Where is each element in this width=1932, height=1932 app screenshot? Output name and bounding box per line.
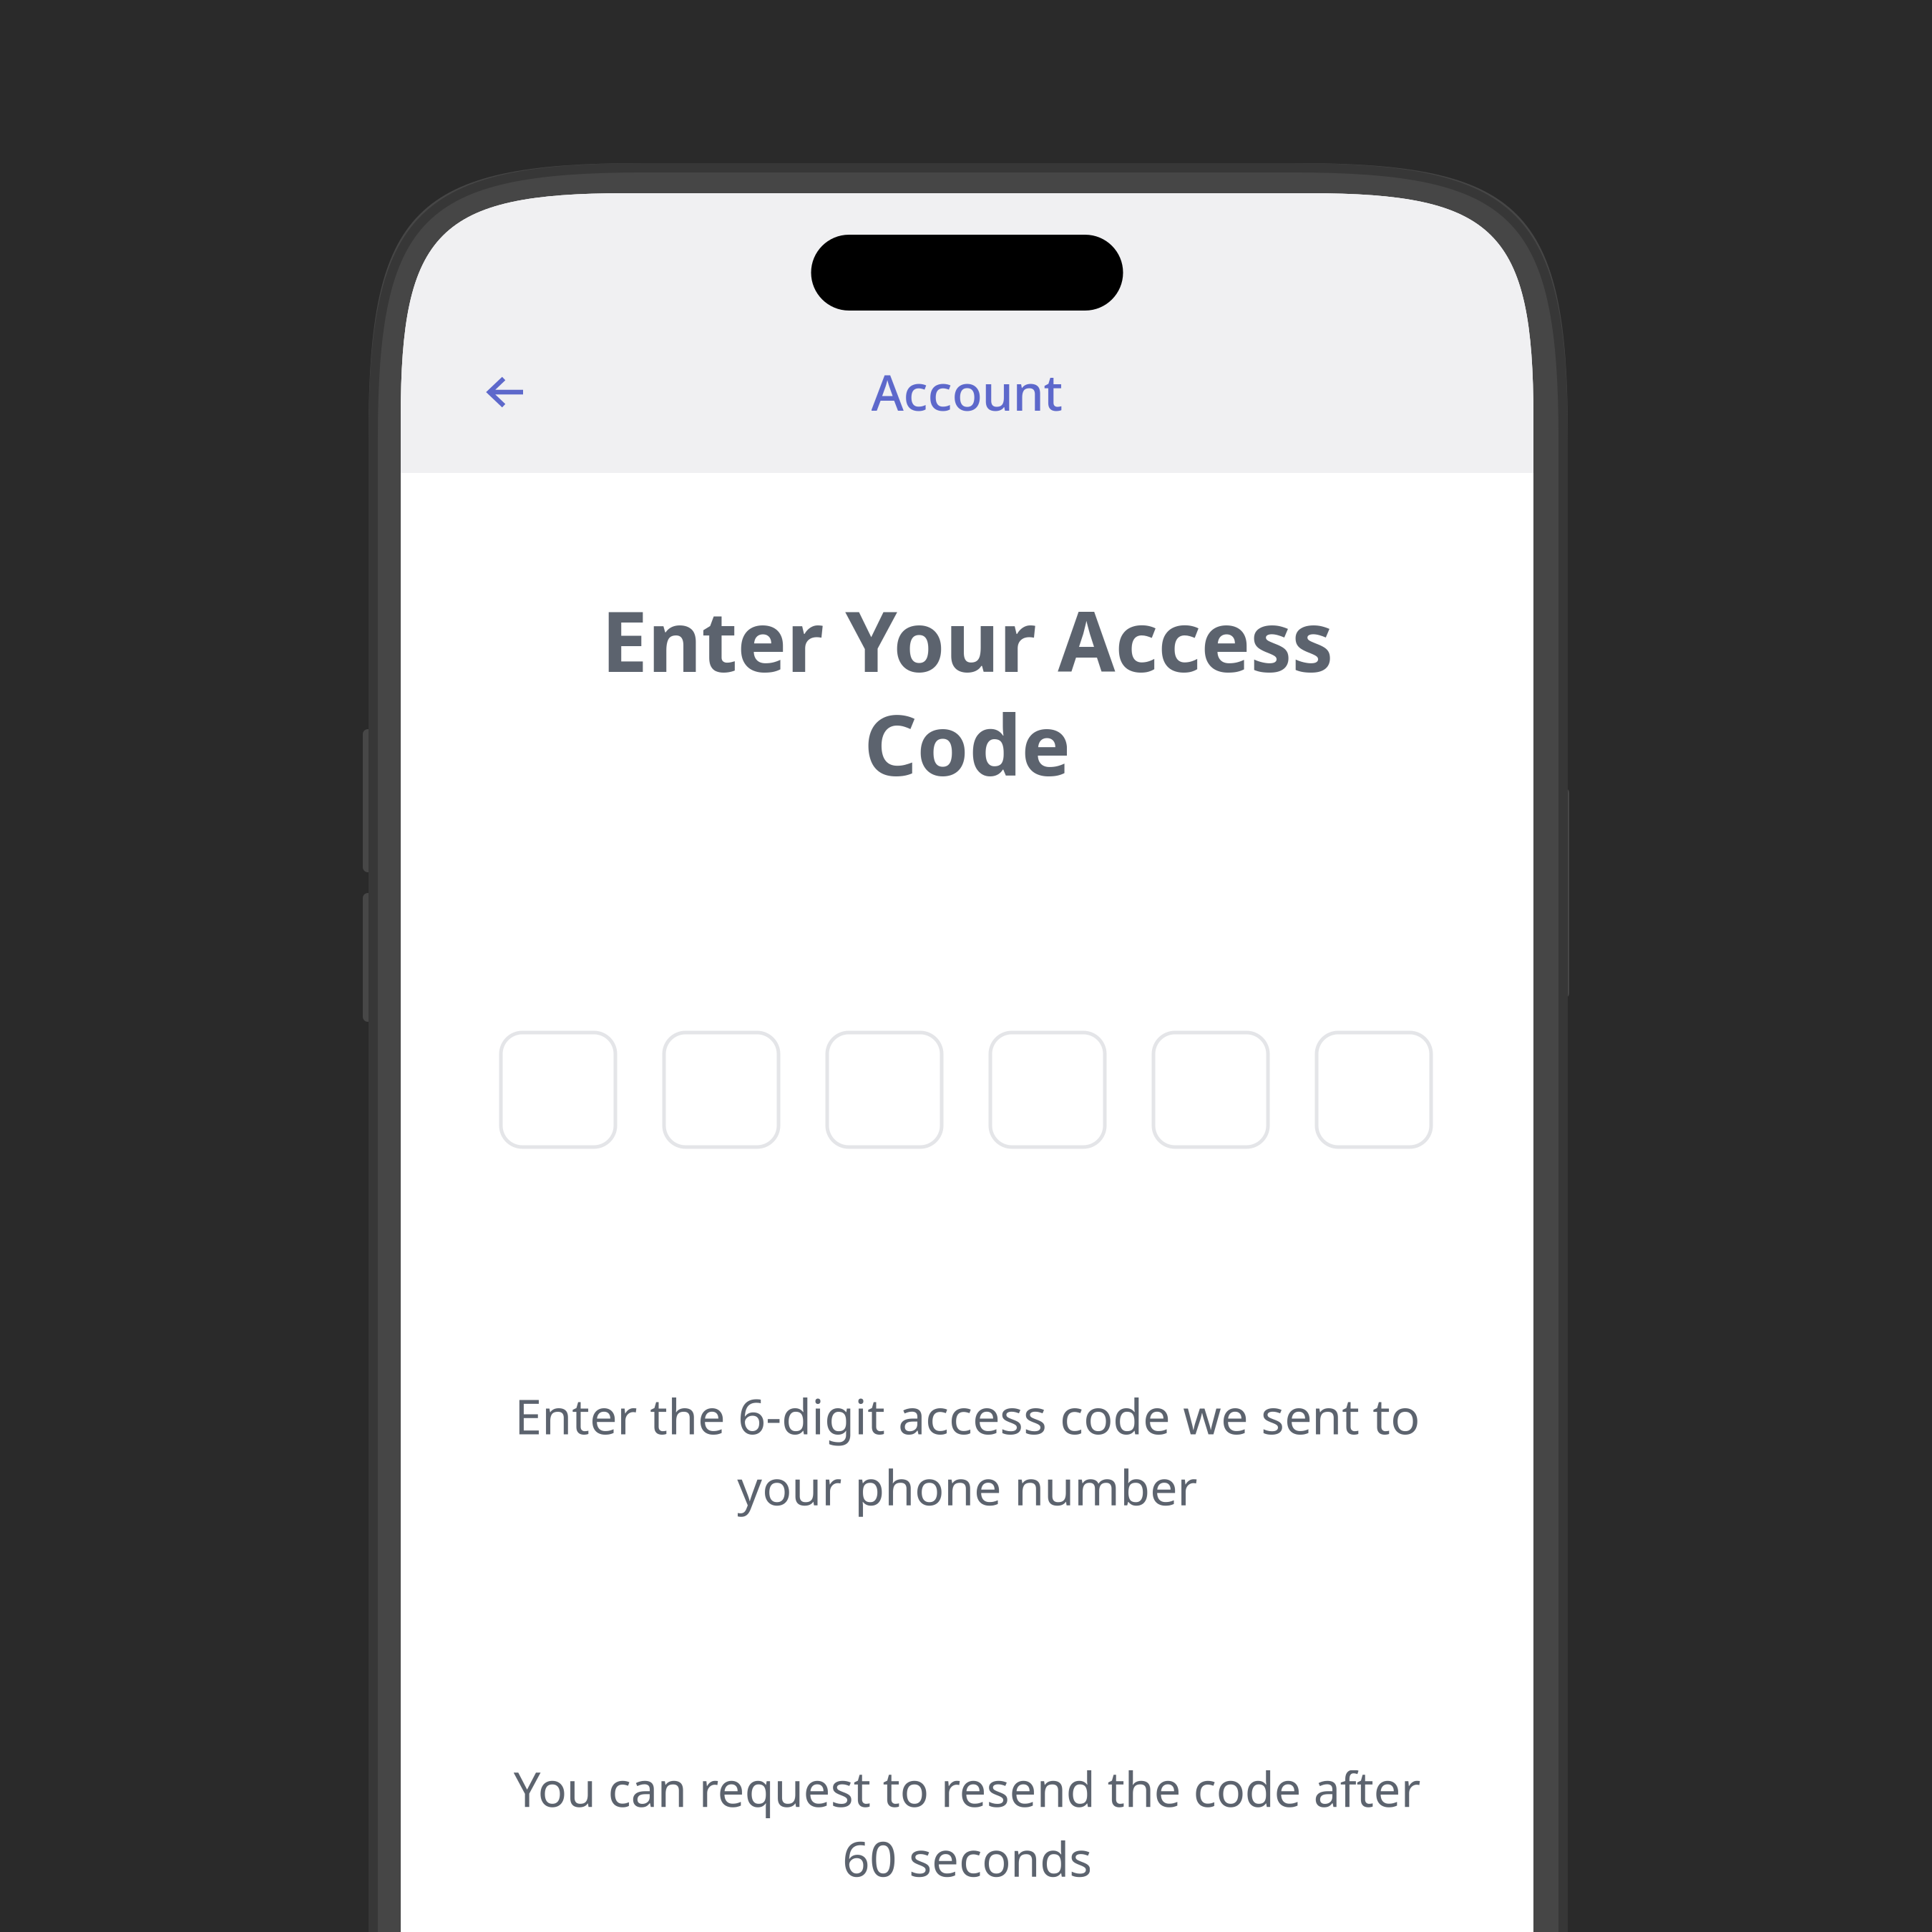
button[interactable]: Access code digit 1 — [501, 1033, 615, 1147]
staticText: Enter the 6-digit access code we sent to… — [514, 1383, 1420, 1519]
button[interactable]: Access code digit 4 — [990, 1033, 1105, 1147]
button[interactable]: Back — [457, 350, 557, 436]
staticText: Account — [871, 358, 1063, 424]
button[interactable]: Access code digit 5 — [1153, 1033, 1268, 1147]
staticText: You can request to resend the code after… — [513, 1757, 1421, 1890]
staticText: Enter Your Access Code — [601, 585, 1333, 799]
button[interactable]: Account — [781, 352, 1153, 431]
button[interactable]: Access code digit 2 — [664, 1033, 779, 1147]
button[interactable]: Access code digit 6 — [1317, 1033, 1431, 1147]
button[interactable]: Access code digit 3 — [827, 1033, 942, 1147]
